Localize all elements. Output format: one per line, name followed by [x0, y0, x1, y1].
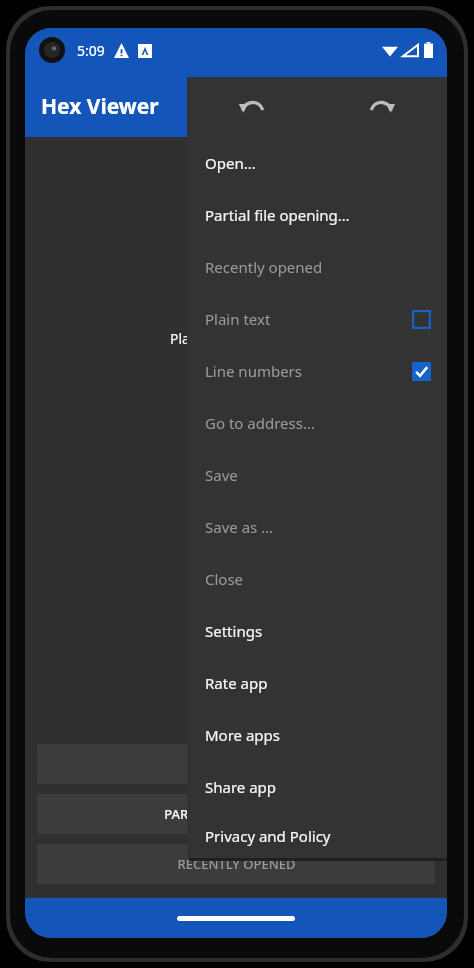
staticText: Save as …: [205, 517, 431, 537]
button[interactable]: Line numbers: [187, 345, 447, 397]
button[interactable]: Open…: [187, 137, 447, 189]
staticText: Open…: [205, 153, 431, 173]
button[interactable]: Partial file opening…: [187, 189, 447, 241]
staticText: PARTIAL FILE OPENING: [164, 805, 308, 823]
button[interactable]: PARTIAL FILE OPENING: [37, 794, 435, 834]
staticText: Settings: [205, 621, 431, 641]
staticText: Save: [205, 465, 431, 485]
staticText: 5:09: [77, 41, 105, 60]
staticText: More apps: [205, 725, 431, 745]
staticText: Recently opened: [205, 257, 431, 277]
staticText: Share app: [205, 777, 431, 797]
staticText: RECENTLY OPENED: [177, 855, 296, 873]
button[interactable]: OPEN: [37, 744, 435, 784]
staticText: Privacy and Policy: [205, 826, 431, 846]
staticText: Close: [205, 569, 431, 589]
button[interactable]: Plain text: [187, 293, 447, 345]
staticText: Line numbers: [205, 361, 412, 381]
button[interactable]: Share app: [187, 761, 447, 813]
button[interactable]: Close: [187, 553, 447, 605]
button[interactable]: Privacy and Policy: [187, 813, 447, 858]
staticText: Plain text: [170, 329, 231, 348]
button[interactable]: Settings: [187, 605, 447, 657]
staticText: Go to address…: [205, 413, 431, 433]
staticText: Hex Viewer: [41, 92, 159, 121]
button[interactable]: Recently opened: [187, 241, 447, 293]
button[interactable]: RECENTLY OPENED: [37, 844, 435, 884]
staticText: Partial file opening…: [205, 205, 431, 225]
button[interactable]: Undo: [187, 77, 317, 137]
button[interactable]: Go to address…: [187, 397, 447, 449]
staticText: Plain text: [205, 309, 412, 329]
staticText: Rate app: [205, 673, 431, 693]
button[interactable]: More apps: [187, 709, 447, 761]
button[interactable]: Redo: [317, 77, 447, 137]
button[interactable]: Save: [187, 449, 447, 501]
button[interactable]: Rate app: [187, 657, 447, 709]
button[interactable]: Save as …: [187, 501, 447, 553]
